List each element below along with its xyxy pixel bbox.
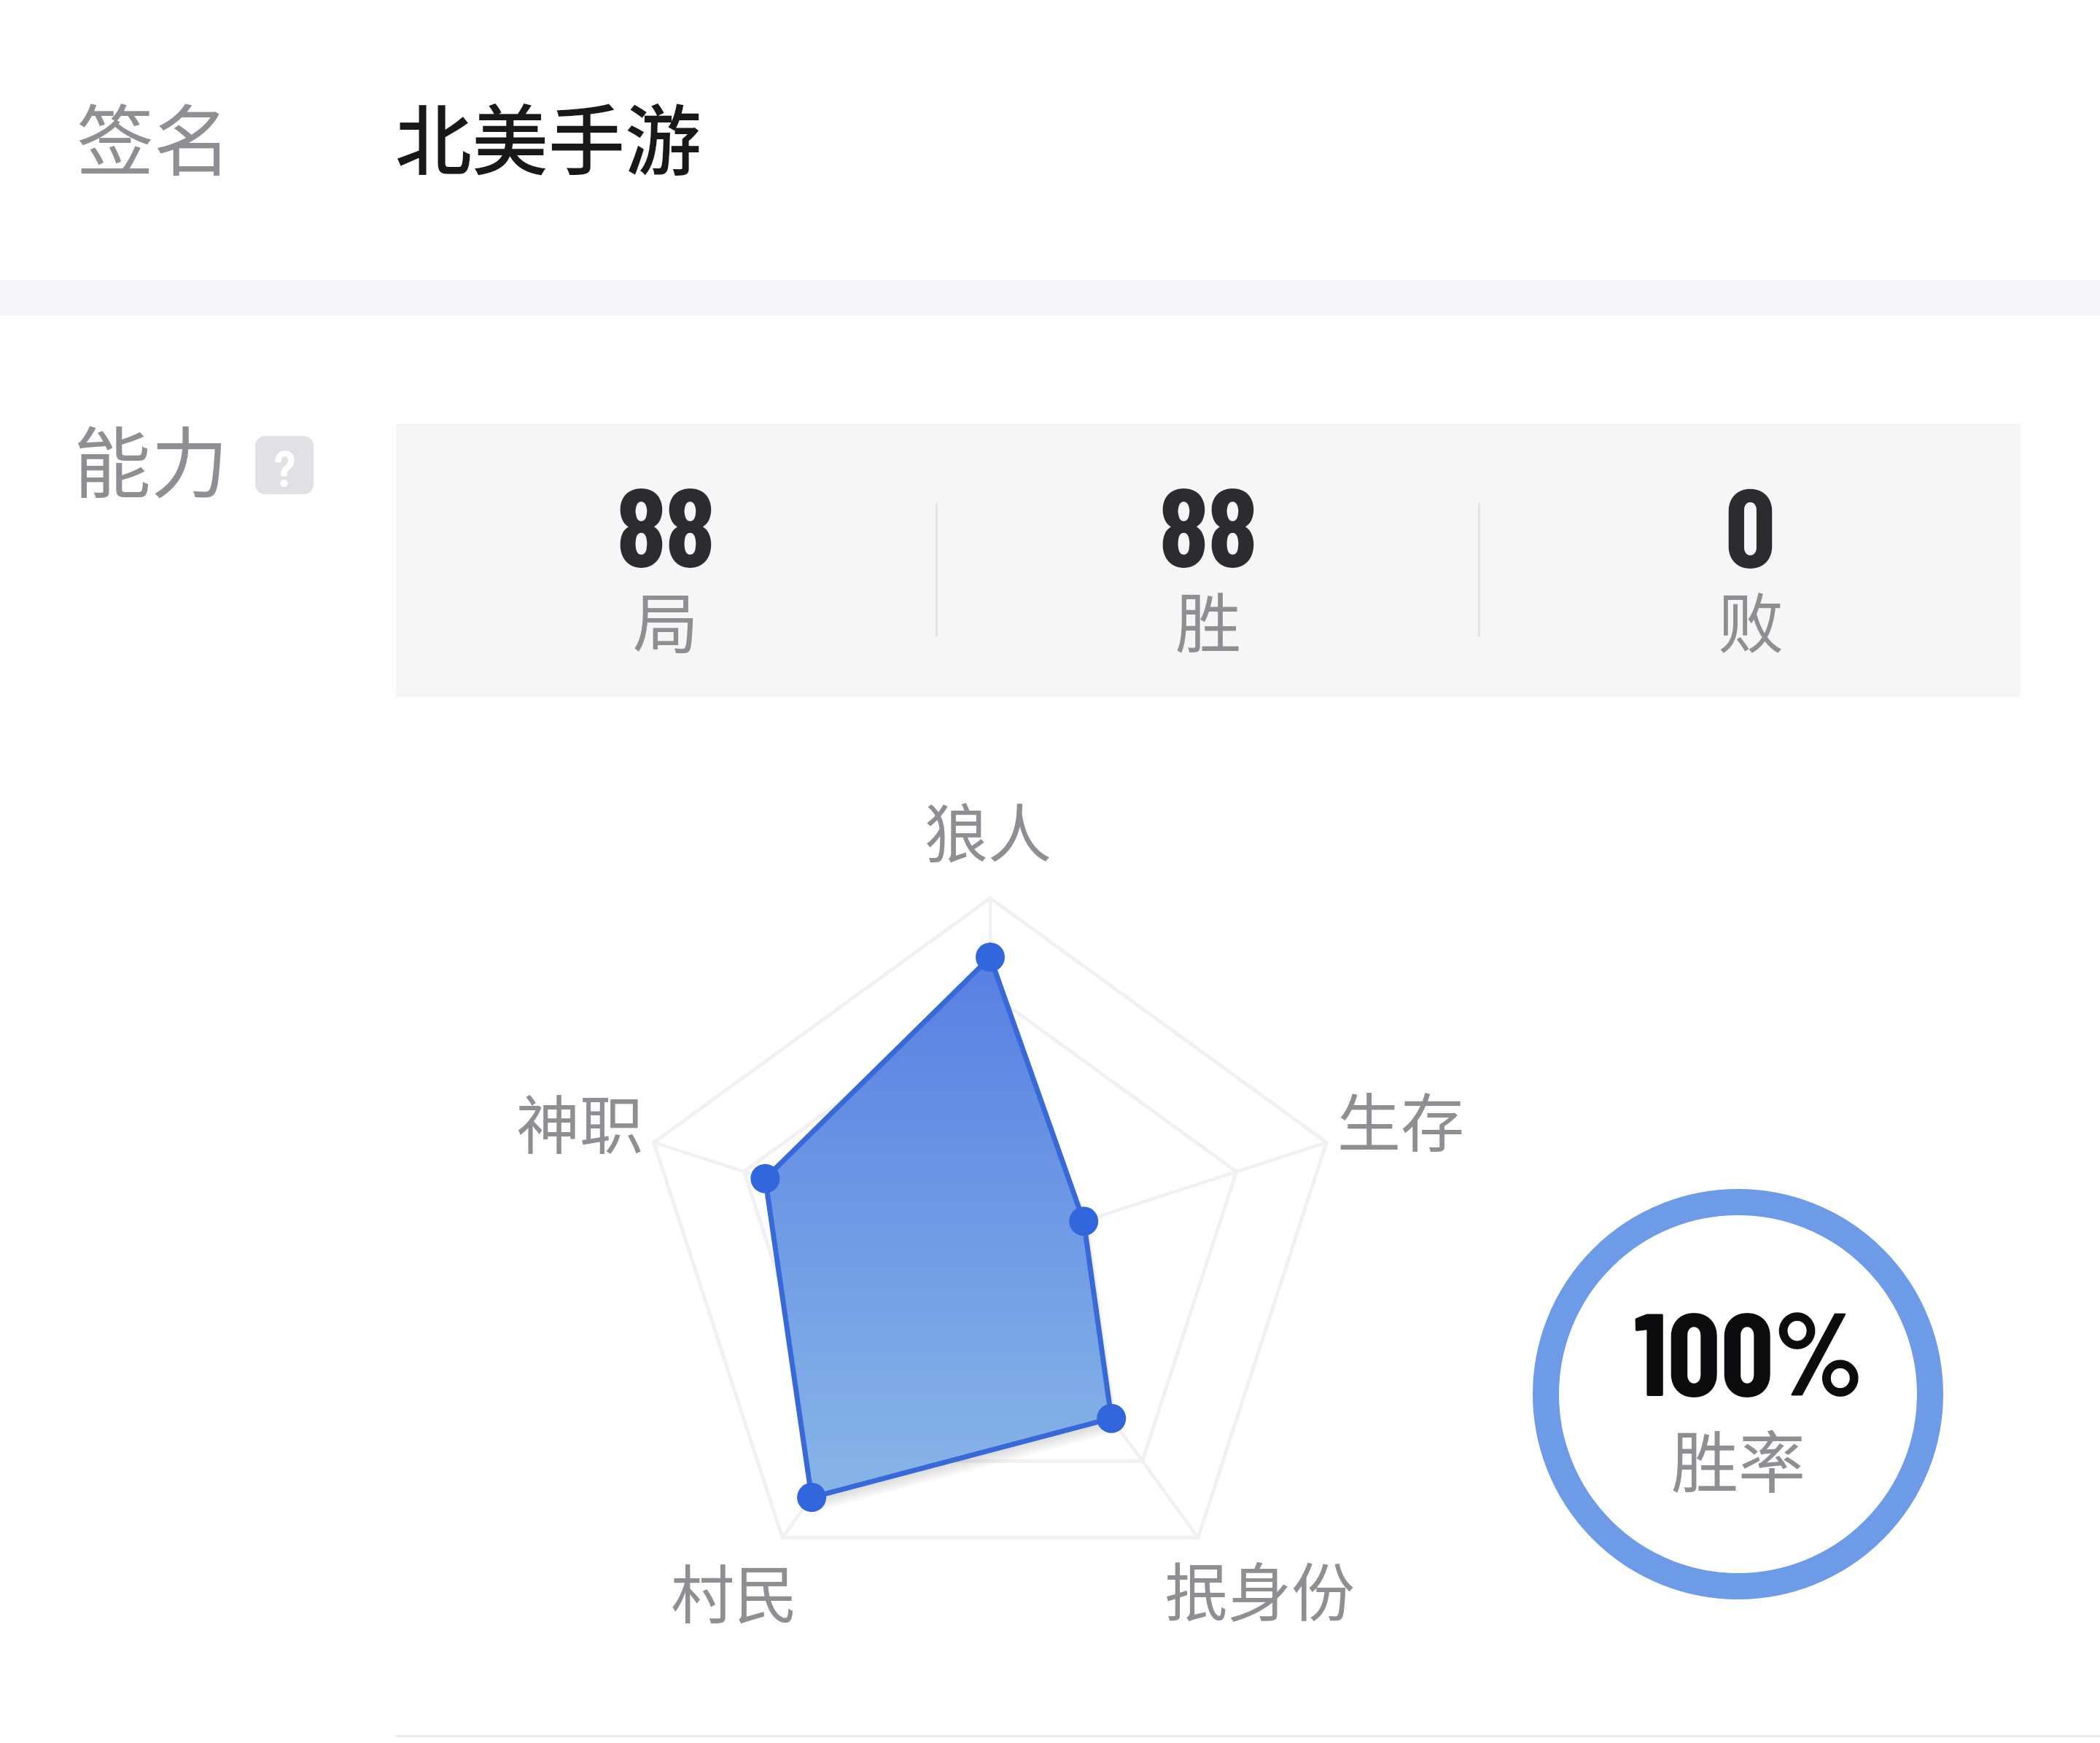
staticText: 签名 — [77, 79, 231, 191]
staticText: 100% — [1634, 1279, 1864, 1419]
button[interactable]: 签名 — [0, 0, 2100, 286]
staticText: 北美手游 — [395, 79, 702, 190]
staticText: 胜率 — [1671, 1409, 1806, 1506]
staticText: 败 — [1718, 572, 1784, 666]
staticText: 村民 — [671, 1545, 798, 1637]
staticText: 0 — [1725, 456, 1776, 589]
button[interactable]: 88 — [396, 424, 936, 697]
staticText: 狼人 — [925, 784, 1051, 876]
staticText: 生存 — [1337, 1073, 1464, 1165]
staticText: 88 — [617, 456, 715, 589]
staticText: 神职 — [516, 1075, 643, 1167]
staticText: 局 — [633, 572, 699, 666]
button[interactable]: 88 — [938, 424, 1478, 697]
button[interactable]: 帮助 — [255, 436, 314, 494]
staticText: 抿身份 — [1164, 1543, 1355, 1634]
staticText: 胜 — [1175, 572, 1241, 666]
staticText: 88 — [1159, 456, 1257, 589]
staticText: 能力 — [74, 402, 228, 513]
staticText: ? — [274, 436, 295, 494]
button[interactable]: 0 — [1480, 424, 2021, 697]
button[interactable]: 胜率 100% — [1533, 1189, 1943, 1599]
